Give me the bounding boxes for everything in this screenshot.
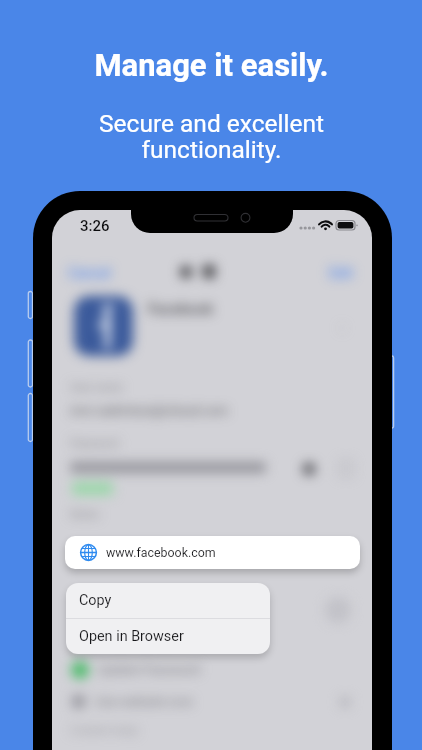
staticText: Cancel: [68, 265, 111, 281]
button[interactable]: Website icon: [65, 536, 360, 569]
other: Website icon: [80, 544, 97, 561]
staticText: Use website icon: [95, 694, 194, 709]
staticText: Manage it easily.: [94, 47, 329, 83]
staticText: Secure and excellent functionality.: [99, 109, 324, 164]
button[interactable]: Copy: [66, 583, 270, 618]
staticText: mnr.vadimtsoi@icloud.com: [70, 403, 229, 418]
staticText: Open in Browser: [79, 628, 184, 645]
staticText: Facebook: [148, 300, 214, 318]
staticText: Edit: [329, 265, 353, 281]
button[interactable]: Open in Browser: [66, 619, 270, 654]
staticText: 3:26: [80, 217, 110, 235]
staticText: Copy: [79, 592, 112, 609]
staticText: www.facebook.com: [106, 545, 216, 560]
